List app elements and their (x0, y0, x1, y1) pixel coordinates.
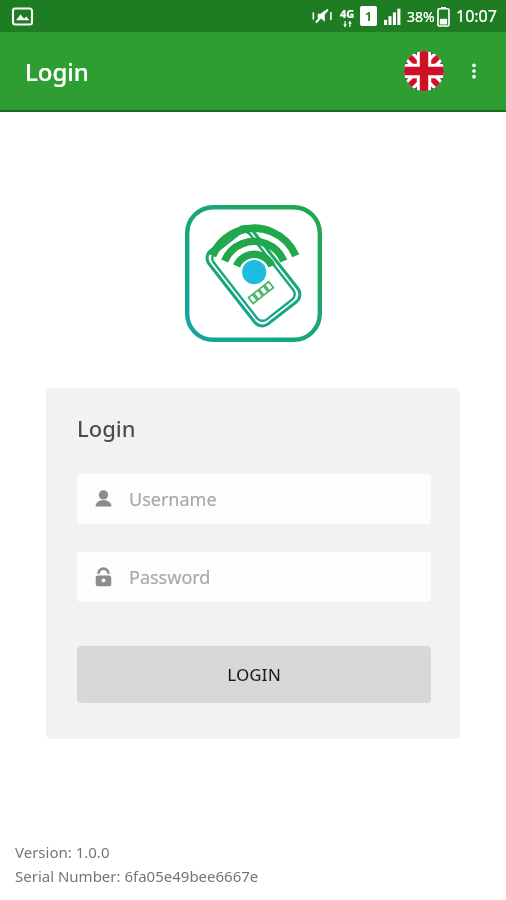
button[interactable]: More options (450, 47, 498, 95)
staticText: 38% (407, 7, 435, 26)
staticText: 4G (340, 6, 355, 21)
staticText: LOGIN (227, 663, 281, 686)
button[interactable]: LOGIN (77, 646, 431, 703)
button[interactable]: Username (77, 474, 431, 524)
staticText: Username (129, 487, 217, 512)
staticText: Password (129, 565, 211, 590)
staticText: 10:07 (456, 5, 497, 27)
staticText: 1 (365, 8, 372, 24)
staticText: Login (77, 413, 136, 443)
button[interactable]: Change language (398, 45, 450, 97)
button[interactable]: Password (77, 552, 431, 602)
staticText: Login (25, 55, 89, 88)
staticText: Version: 1.0.0 (15, 842, 110, 862)
staticText: Serial Number: 6fa05e49bee6667e (15, 866, 259, 886)
